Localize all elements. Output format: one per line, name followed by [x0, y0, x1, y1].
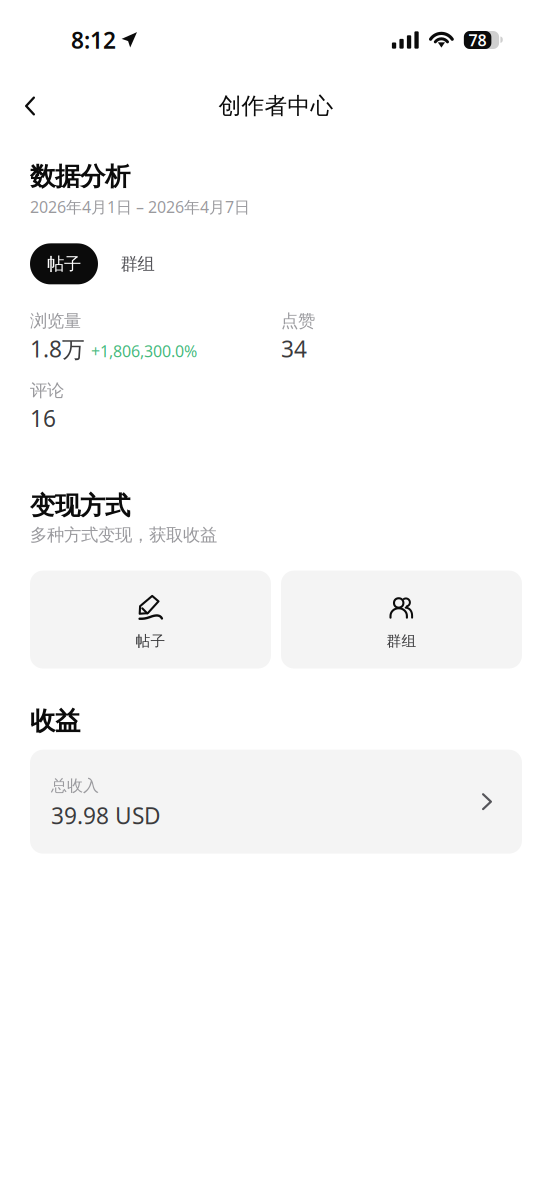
- staticText: 数据分析: [30, 161, 130, 192]
- button[interactable]: 帖子: [30, 571, 271, 669]
- staticText: 34: [281, 334, 307, 364]
- staticText: 收益: [30, 706, 80, 737]
- button[interactable]: 群组: [281, 571, 522, 669]
- button[interactable]: 总收入: [30, 750, 522, 854]
- button[interactable]: 群组: [98, 243, 177, 284]
- staticText: 78: [469, 29, 487, 51]
- staticText: 群组: [120, 253, 154, 274]
- button[interactable]: 帖子: [30, 243, 98, 284]
- staticText: 多种方式变现，获取收益: [30, 524, 217, 546]
- staticText: 创作者中心: [218, 92, 333, 120]
- staticText: 16: [30, 403, 56, 433]
- staticText: 帖子: [135, 632, 165, 650]
- staticText: 浏览量: [30, 310, 81, 332]
- staticText: 帖子: [47, 253, 81, 274]
- button[interactable]: Back: [8, 84, 52, 128]
- staticText: 点赞: [281, 310, 315, 332]
- staticText: 8:12: [71, 25, 116, 55]
- staticText: 变现方式: [30, 490, 130, 521]
- staticText: 总收入: [51, 776, 99, 795]
- staticText: +1,806,300.0%: [91, 340, 197, 362]
- staticText: 1.8万: [30, 334, 85, 364]
- staticText: 2026年4月1日 – 2026年4月7日: [30, 196, 250, 217]
- staticText: 39.98 USD: [51, 800, 161, 830]
- staticText: 评论: [30, 380, 64, 401]
- staticText: 群组: [386, 632, 416, 650]
